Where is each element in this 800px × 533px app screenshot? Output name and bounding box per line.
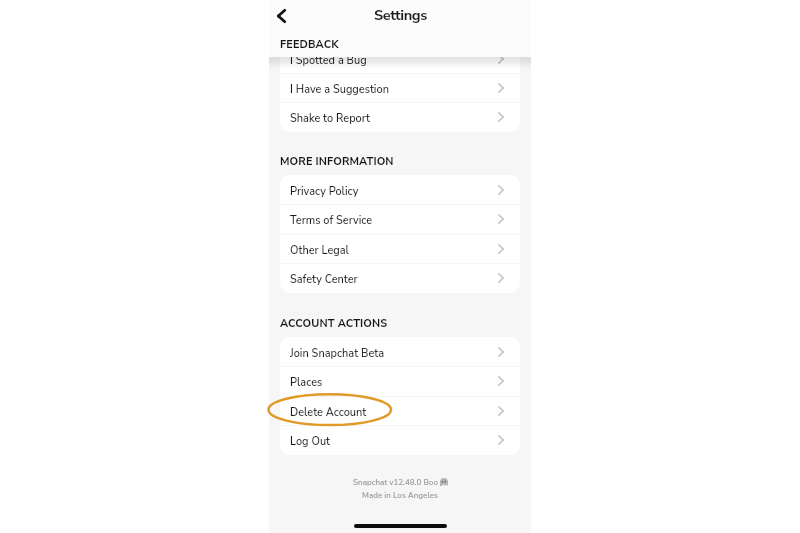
- button[interactable]: Safety Center: [280, 263, 520, 292]
- staticText: Delete Account: [290, 405, 367, 420]
- staticText: Shake to Report: [290, 111, 371, 126]
- button[interactable]: I Spotted a Bug: [280, 57, 520, 73]
- button[interactable]: Other Legal: [280, 234, 520, 263]
- button[interactable]: Log Out: [280, 425, 520, 454]
- staticText: FEEDBACK: [280, 37, 339, 52]
- staticText: Places: [290, 375, 323, 390]
- staticText: Settings: [374, 5, 427, 25]
- staticText: Made in Los Angeles: [362, 490, 438, 501]
- staticText: Log Out: [290, 434, 331, 449]
- staticText: ACCOUNT ACTIONS: [280, 316, 388, 331]
- button[interactable]: Places: [280, 366, 520, 395]
- button[interactable]: Delete Account: [280, 396, 520, 425]
- button[interactable]: Terms of Service: [280, 204, 520, 233]
- staticText: I Have a Suggestion: [290, 82, 389, 97]
- button[interactable]: Shake to Report: [280, 102, 520, 131]
- button[interactable]: I Have a Suggestion: [280, 73, 520, 102]
- staticText: Terms of Service: [290, 213, 373, 228]
- button[interactable]: Privacy Policy: [280, 175, 520, 204]
- button[interactable]: Back: [270, 4, 293, 27]
- staticText: Safety Center: [290, 272, 358, 287]
- staticText: Other Legal: [290, 243, 349, 258]
- staticText: MORE INFORMATION: [280, 154, 394, 169]
- staticText: Join Snapchat Beta: [290, 346, 385, 361]
- staticText: Snapchat v12.48.0 Boo: [353, 477, 438, 488]
- button[interactable]: Join Snapchat Beta: [280, 337, 520, 366]
- staticText: Privacy Policy: [290, 184, 359, 199]
- staticText: I Spotted a Bug: [290, 57, 367, 68]
